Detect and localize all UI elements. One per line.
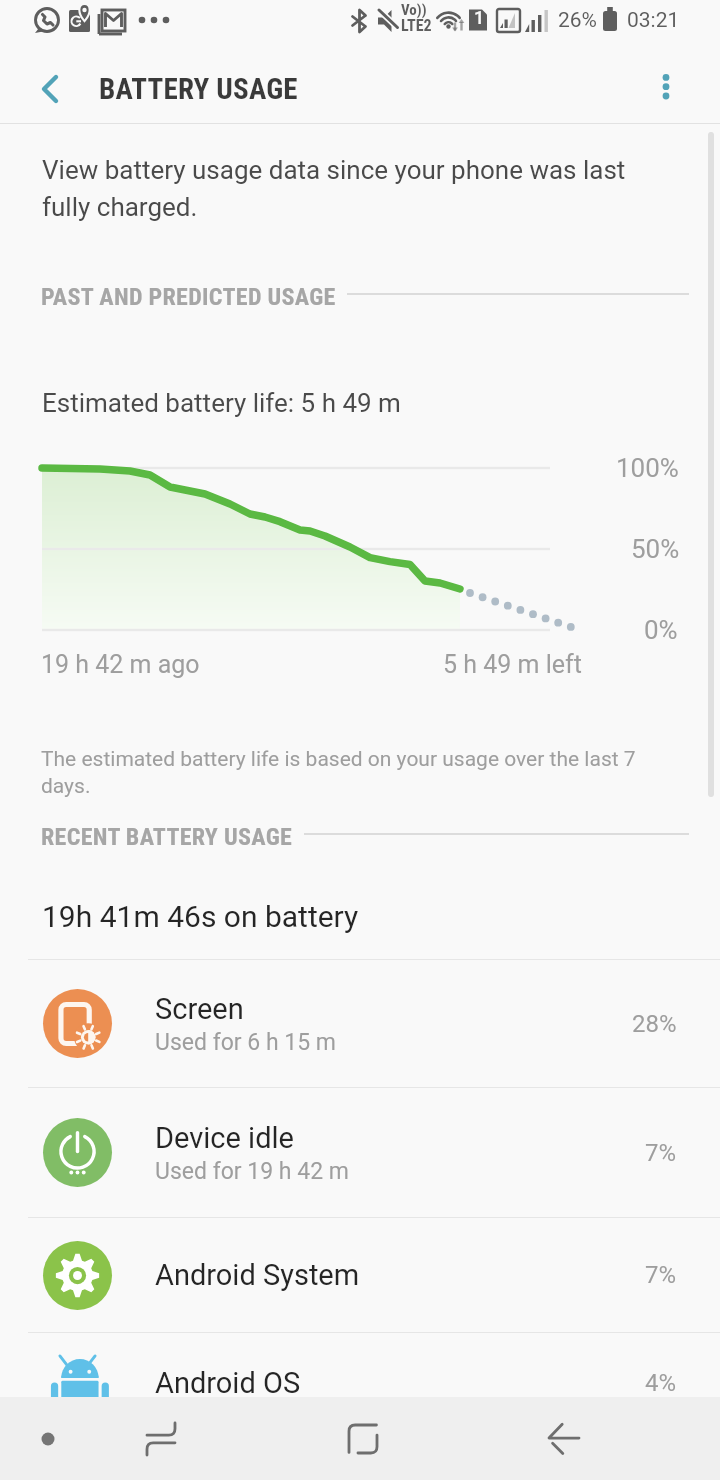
staticText: BATTERY USAGE	[99, 72, 298, 106]
staticText: 0%	[644, 615, 678, 645]
staticText: 50%	[631, 534, 680, 564]
button[interactable]: Recent apps	[121, 1397, 201, 1480]
button[interactable]: Hide keyboard	[8, 1397, 88, 1480]
staticText: 19 h 42 m ago	[41, 650, 200, 679]
staticText: Device idle	[155, 1121, 294, 1155]
button[interactable]: Device idle	[0, 1088, 720, 1217]
staticText: 19h 41m 46s on battery	[42, 899, 359, 934]
staticText: Android OS	[155, 1366, 301, 1400]
staticText: 03:21	[627, 8, 680, 33]
staticText: PAST AND PREDICTED USAGE	[41, 283, 336, 305]
staticText: 4%	[645, 1369, 677, 1397]
staticText: RECENT BATTERY USAGE	[41, 823, 293, 845]
button[interactable]: Android OS	[0, 1333, 720, 1432]
staticText: 100%	[616, 453, 679, 483]
staticText: 1	[474, 7, 485, 28]
staticText: 5 h 49 m left	[443, 650, 582, 679]
staticText: 7%	[645, 1139, 677, 1167]
staticText: Vo))	[401, 1, 427, 19]
staticText: LTE2	[401, 16, 432, 35]
staticText: Estimated battery life: 5 h 49 m	[42, 388, 401, 418]
staticText: Used for 19 h 42 m	[155, 1158, 349, 1185]
button[interactable]: More options	[626, 55, 706, 123]
staticText: Screen	[155, 992, 244, 1026]
button[interactable]: Screen	[0, 960, 720, 1087]
staticText: 26%	[558, 8, 597, 33]
staticText: 28%	[632, 1010, 677, 1038]
button[interactable]: Navigate up	[10, 55, 90, 123]
button[interactable]: Back	[524, 1397, 604, 1480]
staticText: 7%	[645, 1261, 677, 1289]
staticText: The estimated battery life is based on y…	[41, 747, 653, 798]
staticText: Used for 6 h 15 m	[155, 1029, 337, 1056]
staticText: Android System	[155, 1258, 360, 1292]
staticText: View battery usage data since your phone…	[42, 155, 642, 223]
button[interactable]: Android System	[0, 1218, 720, 1332]
button[interactable]: Home	[323, 1397, 403, 1480]
